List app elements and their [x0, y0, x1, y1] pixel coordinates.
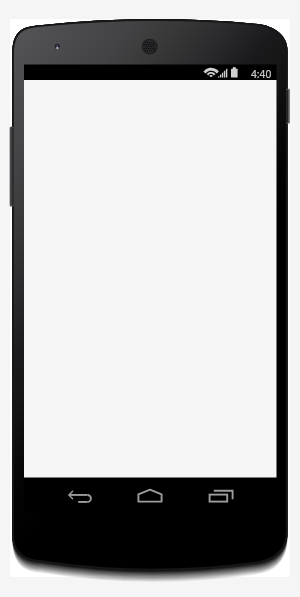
staticText: 4:40: [251, 67, 272, 81]
